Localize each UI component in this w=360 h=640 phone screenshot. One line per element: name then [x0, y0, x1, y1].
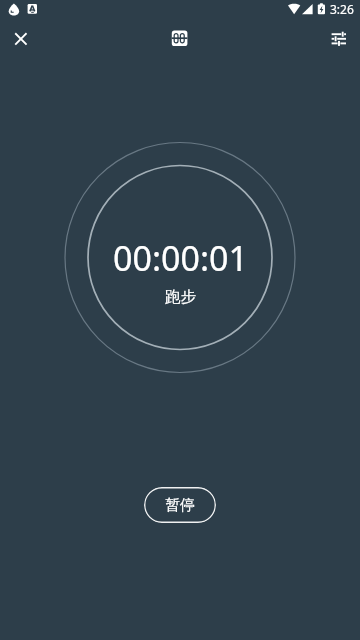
staticText: 3:26	[330, 1, 354, 17]
button[interactable]: Settings	[318, 24, 360, 64]
staticText: 00:00:01	[113, 235, 248, 281]
button[interactable]: Timer	[160, 24, 200, 64]
button[interactable]: 暂停	[144, 487, 216, 523]
staticText: 跑步	[165, 287, 196, 307]
button[interactable]: Close	[0, 24, 42, 64]
staticText: 暂停	[165, 496, 195, 515]
